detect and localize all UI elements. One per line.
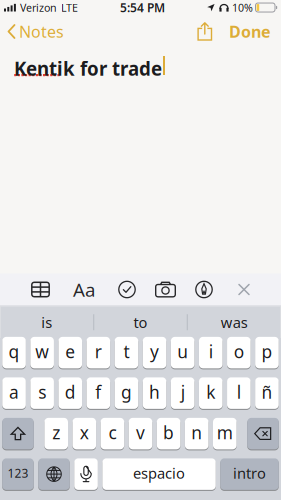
button[interactable]: Shift: [2, 417, 34, 450]
staticText: c: [108, 421, 116, 444]
staticText: b: [163, 421, 174, 444]
staticText: Aa: [73, 277, 95, 302]
staticText: k: [206, 381, 215, 404]
button[interactable]: y: [143, 336, 166, 369]
staticText: 10%: [232, 0, 253, 15]
staticText: i: [209, 340, 213, 363]
button[interactable]: Delete: [247, 417, 279, 450]
staticText: l: [237, 381, 241, 404]
button[interactable]: Notes: [0, 21, 64, 42]
button[interactable]: was: [188, 306, 281, 338]
button[interactable]: t: [115, 336, 138, 369]
button[interactable]: Checklist: [95, 280, 136, 298]
button[interactable]: z: [44, 417, 68, 450]
staticText: to: [133, 312, 147, 332]
button[interactable]: intro: [220, 458, 279, 490]
staticText: m: [217, 421, 233, 444]
button[interactable]: g: [115, 377, 138, 409]
button[interactable]: n: [185, 417, 208, 450]
button[interactable]: s: [30, 377, 54, 409]
staticText: t: [123, 340, 129, 363]
button[interactable]: Markup: [176, 280, 213, 298]
button[interactable]: Close: [238, 283, 281, 295]
button[interactable]: Done: [229, 21, 281, 42]
staticText: y: [150, 340, 159, 363]
staticText: 5:54 PM: [120, 0, 165, 15]
staticText: x: [80, 421, 89, 444]
button[interactable]: e: [58, 336, 82, 369]
button[interactable]: o: [227, 336, 251, 369]
button[interactable]: r: [87, 336, 110, 369]
staticText: z: [52, 421, 60, 444]
staticText: Kentik for trade: [14, 56, 162, 81]
staticText: u: [177, 340, 188, 363]
button[interactable]: q: [2, 336, 26, 369]
button[interactable]: b: [157, 417, 180, 450]
button[interactable]: ñ: [255, 377, 279, 409]
button[interactable]: d: [58, 377, 82, 409]
staticText: f: [95, 381, 101, 404]
button[interactable]: l: [227, 377, 251, 409]
button[interactable]: Insert table: [0, 281, 50, 297]
staticText: Verizon: [20, 0, 57, 15]
staticText: s: [38, 381, 46, 404]
staticText: o: [234, 340, 244, 363]
staticText: d: [65, 381, 76, 404]
button[interactable]: to: [94, 306, 187, 338]
staticText: g: [121, 381, 132, 404]
staticText: intro: [233, 463, 266, 483]
button[interactable]: Share: [196, 22, 229, 41]
button[interactable]: x: [72, 417, 96, 450]
button[interactable]: m: [213, 417, 237, 450]
staticText: n: [191, 421, 202, 444]
staticText: ñ: [261, 381, 272, 404]
button[interactable]: w: [30, 336, 54, 369]
button[interactable]: is: [0, 306, 93, 338]
button[interactable]: f: [87, 377, 110, 409]
staticText: a: [9, 381, 19, 404]
staticText: h: [149, 381, 160, 404]
button[interactable]: v: [129, 417, 152, 450]
staticText: 123: [7, 465, 28, 481]
button[interactable]: a: [2, 377, 26, 409]
staticText: w: [35, 340, 49, 363]
staticText: e: [65, 340, 75, 363]
staticText: Notes: [19, 21, 64, 42]
staticText: was: [221, 312, 248, 332]
staticText: p: [261, 340, 272, 363]
staticText: espacio: [133, 463, 185, 483]
button[interactable]: j: [171, 377, 194, 409]
button[interactable]: Dictate: [74, 458, 98, 490]
staticText: q: [9, 340, 20, 363]
staticText: j: [181, 381, 185, 404]
button[interactable]: Next keyboard: [38, 458, 70, 490]
button[interactable]: h: [143, 377, 166, 409]
staticText: r: [95, 340, 102, 363]
button[interactable]: espacio: [102, 458, 216, 490]
button[interactable]: i: [199, 336, 222, 369]
button[interactable]: c: [101, 417, 124, 450]
staticText: is: [41, 312, 52, 332]
button[interactable]: 123: [2, 458, 34, 490]
staticText: LTE: [61, 0, 78, 15]
button[interactable]: k: [199, 377, 222, 409]
staticText: v: [136, 421, 145, 444]
button[interactable]: Camera: [136, 281, 176, 297]
button[interactable]: p: [255, 336, 279, 369]
button[interactable]: Text formatting: [50, 277, 95, 302]
button[interactable]: u: [171, 336, 194, 369]
staticText: Done: [229, 21, 271, 42]
